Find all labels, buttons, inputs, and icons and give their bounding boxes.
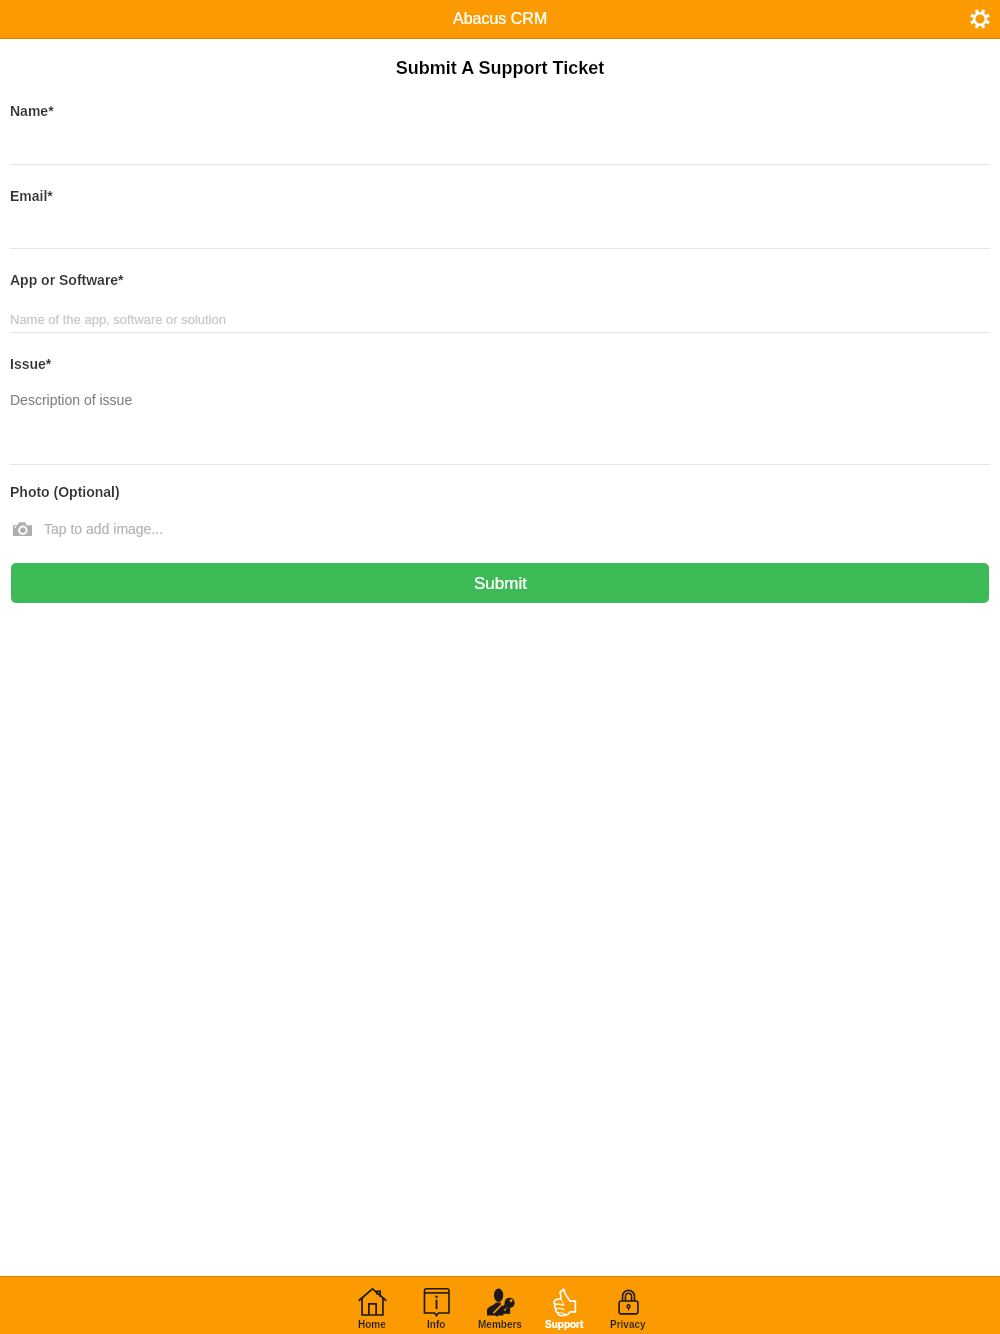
button[interactable]: Home (340, 1277, 404, 1334)
staticText: Members (478, 1319, 522, 1330)
button[interactable]: Support (532, 1277, 596, 1334)
staticText: Name of the app, software or solution (10, 312, 227, 327)
button[interactable]: App or Software field (10, 292, 990, 333)
staticText: Submit (474, 574, 527, 593)
button[interactable]: Privacy (596, 1277, 660, 1334)
staticText: Submit A Support Ticket (0, 58, 1000, 78)
staticText: Issue* (10, 356, 52, 372)
button[interactable]: Members (468, 1277, 532, 1334)
button[interactable]: Email field (10, 204, 990, 249)
staticText: Description of issue (10, 392, 133, 408)
staticText: Tap to add image... (44, 521, 164, 537)
button[interactable]: Submit (11, 563, 989, 603)
button[interactable]: Settings (962, 0, 1000, 38)
staticText: Home (358, 1319, 386, 1330)
staticText: Name* (10, 103, 54, 119)
staticText: Privacy (610, 1319, 646, 1330)
staticText: Photo (Optional) (10, 484, 120, 500)
button[interactable]: Issue field (10, 376, 990, 465)
button[interactable]: Info (404, 1277, 468, 1334)
staticText: App or Software* (10, 272, 124, 288)
staticText: Email* (10, 188, 53, 204)
staticText: Abacus CRM (453, 10, 548, 28)
button[interactable]: Tap to add image... (13, 518, 990, 540)
staticText: Support (545, 1319, 584, 1330)
staticText: Info (427, 1319, 446, 1330)
button[interactable]: Name field (10, 120, 990, 165)
